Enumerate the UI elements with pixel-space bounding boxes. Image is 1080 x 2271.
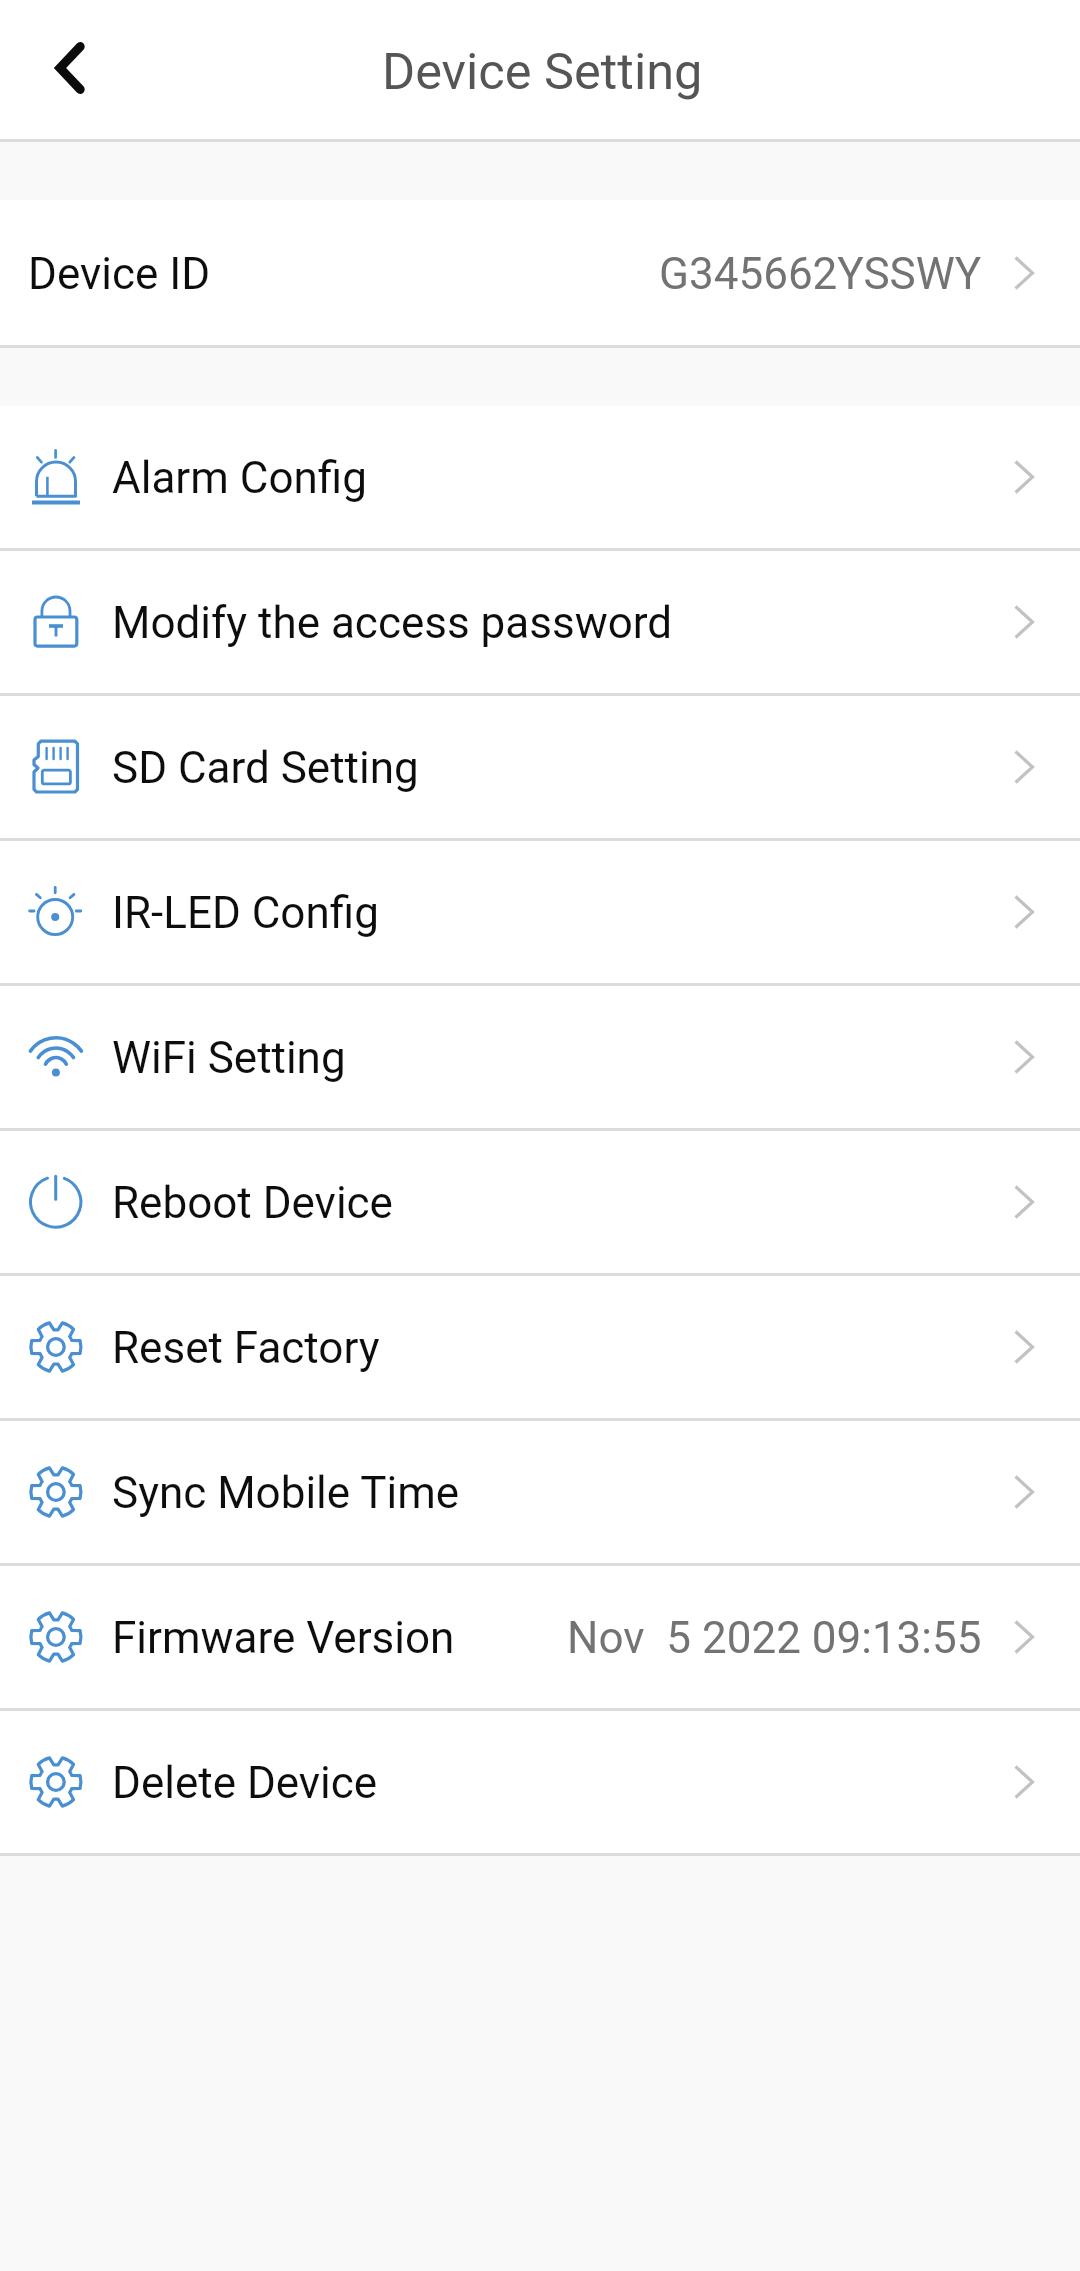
staticText: Device Setting: [382, 42, 703, 101]
button[interactable]: Back: [0, 1, 138, 139]
staticText: Nov 5 2022 09:13:55: [567, 1612, 982, 1664]
button[interactable]: Reset Factory: [0, 1276, 1080, 1418]
staticText: Alarm Config: [112, 452, 367, 504]
staticText: Reset Factory: [112, 1322, 380, 1374]
button[interactable]: Reboot Device: [0, 1131, 1080, 1273]
staticText: Firmware Version: [112, 1612, 455, 1664]
staticText: IR-LED Config: [112, 887, 379, 939]
button[interactable]: Alarm Config: [0, 406, 1080, 548]
button[interactable]: IR-LED Config: [0, 841, 1080, 983]
button[interactable]: Device ID: [0, 200, 1080, 345]
button[interactable]: Sync Mobile Time: [0, 1421, 1080, 1563]
button[interactable]: Delete Device: [0, 1711, 1080, 1853]
staticText: SD Card Setting: [112, 742, 419, 794]
button[interactable]: WiFi Setting: [0, 986, 1080, 1128]
button[interactable]: SD Card Setting: [0, 696, 1080, 838]
button[interactable]: Firmware Version: [0, 1566, 1080, 1708]
staticText: WiFi Setting: [112, 1032, 346, 1084]
staticText: Modify the access password: [112, 597, 673, 649]
staticText: Delete Device: [112, 1757, 378, 1809]
staticText: Reboot Device: [112, 1177, 393, 1229]
button[interactable]: Modify the access password: [0, 551, 1080, 693]
staticText: Sync Mobile Time: [112, 1467, 460, 1519]
staticText: G345662YSSWY: [659, 248, 982, 300]
staticText: Device ID: [28, 248, 211, 300]
